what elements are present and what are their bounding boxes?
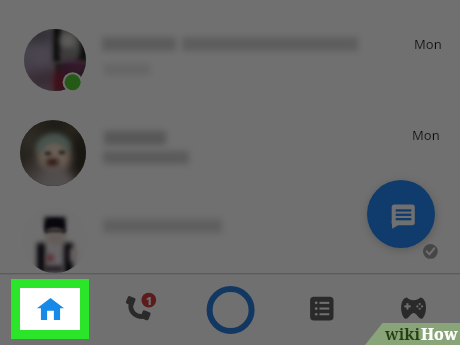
button[interactable]: Conversation 3 [0,186,460,274]
staticText: 1 [146,293,152,307]
staticText: Mon [412,126,440,144]
button[interactable]: New message [367,180,435,248]
staticText: Mon [414,35,442,53]
staticText: How [421,323,458,345]
button[interactable]: Groups [276,274,368,345]
button[interactable]: Home [0,274,92,345]
button[interactable]: Conversation 2 [0,93,460,186]
button[interactable]: People [184,274,276,345]
button[interactable]: Home tab [20,288,80,330]
button[interactable]: Games [368,274,460,345]
button[interactable]: Conversation 1 [0,0,460,93]
staticText: wiki [385,323,421,345]
button[interactable]: Calls [92,274,184,345]
